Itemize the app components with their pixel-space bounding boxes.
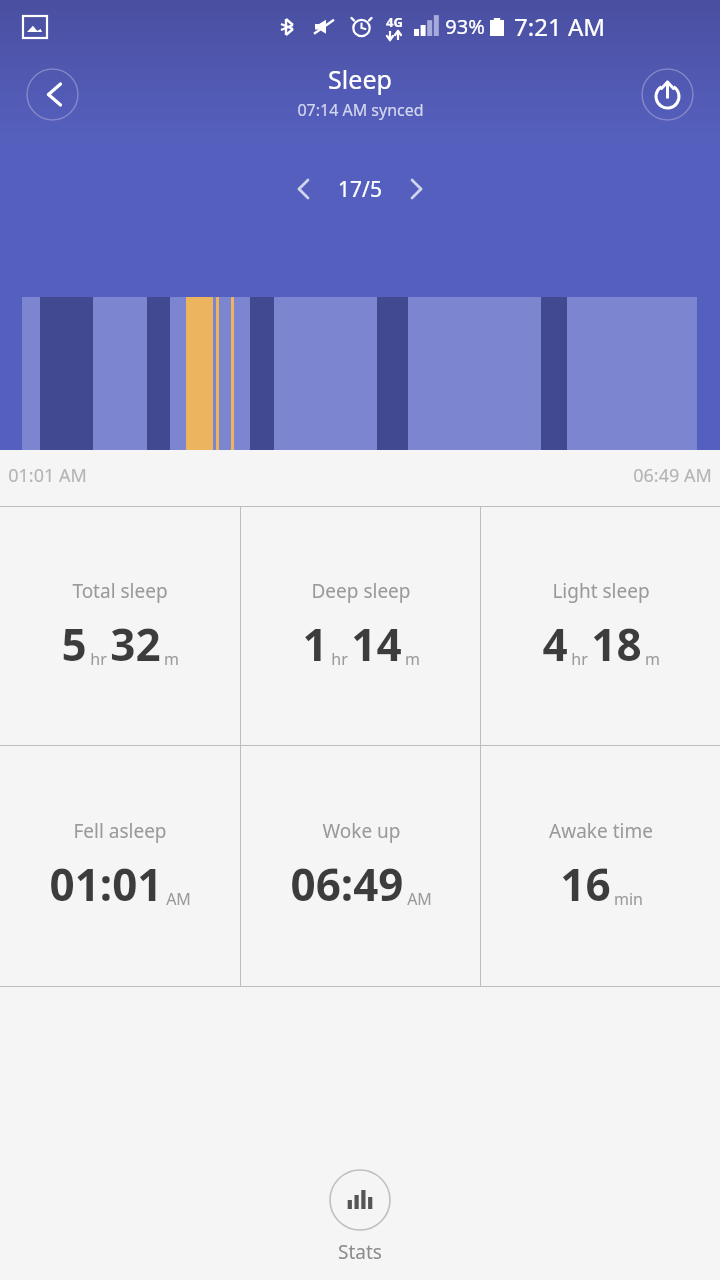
staticText: Sleep <box>328 62 392 96</box>
button[interactable]: Woke up <box>241 746 480 986</box>
staticText: 16 <box>560 854 611 914</box>
button[interactable]: Deep sleep <box>241 507 480 745</box>
staticText: 5 <box>61 614 87 674</box>
staticText: 14 <box>351 614 402 674</box>
staticText: hr <box>331 648 348 670</box>
staticText: Deep sleep <box>311 578 411 604</box>
button[interactable]: Fell asleep <box>0 746 240 986</box>
staticText: 93% <box>445 13 485 40</box>
staticText: hr <box>571 648 588 670</box>
staticText: 06:49 AM <box>633 463 712 488</box>
staticText: 1 <box>302 614 328 674</box>
staticText: 4 <box>542 614 568 674</box>
staticText: 07:14 AM synced <box>297 99 424 121</box>
staticText: min <box>614 888 643 910</box>
button[interactable]: Light sleep <box>481 507 720 745</box>
staticText: Total sleep <box>72 578 168 604</box>
staticText: 7:21 AM <box>514 10 605 43</box>
staticText: Awake time <box>549 818 653 844</box>
staticText: Fell asleep <box>73 818 167 844</box>
staticText: AM <box>407 888 432 910</box>
staticText: 4G <box>386 13 403 31</box>
button[interactable]: Stats <box>305 1167 415 1267</box>
button[interactable]: Sync <box>641 68 694 121</box>
button[interactable]: Back <box>26 68 79 121</box>
staticText: hr <box>90 648 107 670</box>
button[interactable]: 17/5 <box>323 175 397 204</box>
staticText: 06:49 <box>290 854 404 914</box>
staticText: 18 <box>591 614 642 674</box>
staticText: 17/5 <box>338 175 382 204</box>
staticText: Woke up <box>322 818 401 844</box>
staticText: 01:01 AM <box>8 463 87 488</box>
button[interactable]: Total sleep <box>0 507 240 745</box>
staticText: 32 <box>110 614 161 674</box>
staticText: Stats <box>338 1239 382 1265</box>
button[interactable]: Next day <box>397 167 441 211</box>
button[interactable]: Awake time <box>481 746 720 986</box>
staticText: m <box>405 648 420 670</box>
staticText: Light sleep <box>552 578 650 604</box>
staticText: m <box>164 648 179 670</box>
staticText: m <box>645 648 660 670</box>
staticText: 01:01 <box>49 854 163 914</box>
button[interactable]: Previous day <box>279 167 323 211</box>
staticText: AM <box>166 888 191 910</box>
